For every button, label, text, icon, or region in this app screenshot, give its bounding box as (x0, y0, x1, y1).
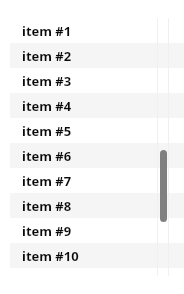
staticText: item #2 (22, 47, 72, 65)
button[interactable]: item #6 (10, 143, 184, 168)
button[interactable]: item #9 (10, 218, 184, 243)
button[interactable]: item #8 (10, 193, 184, 218)
staticText: item #1 (22, 22, 72, 40)
staticText: item #8 (22, 197, 72, 215)
button[interactable]: item #4 (10, 93, 184, 118)
staticText: item #9 (22, 222, 72, 240)
staticText: item #3 (22, 72, 72, 90)
button[interactable]: item #1 (10, 18, 184, 43)
button[interactable]: item #2 (10, 43, 184, 68)
button[interactable]: item #10 (10, 243, 184, 268)
staticText: item #7 (22, 172, 72, 190)
staticText: item #6 (22, 147, 72, 165)
staticText: item #4 (22, 97, 72, 115)
button[interactable]: item #5 (10, 118, 184, 143)
staticText: item #5 (22, 122, 72, 140)
button[interactable]: item #7 (10, 168, 184, 193)
staticText: item #10 (22, 247, 79, 265)
button[interactable]: item #3 (10, 68, 184, 93)
other: Scroll position (160, 150, 167, 222)
